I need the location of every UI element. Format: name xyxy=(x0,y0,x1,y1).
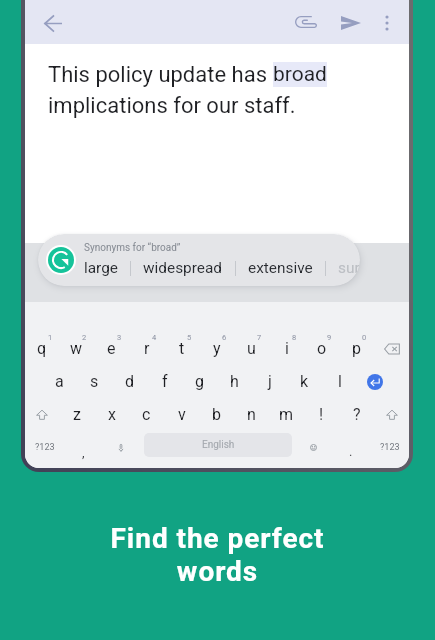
button[interactable]: g xyxy=(182,365,217,398)
staticText: Synonyms for “broad” xyxy=(84,242,181,254)
staticText: Find the perfect words xyxy=(0,522,435,588)
button[interactable]: m xyxy=(269,398,304,431)
staticText: 1 xyxy=(48,333,53,342)
staticText: , xyxy=(82,445,85,460)
staticText: 5 xyxy=(187,333,192,342)
staticText: d xyxy=(125,372,135,391)
staticText: 7 xyxy=(257,333,262,342)
staticText: ?123 xyxy=(35,442,55,453)
staticText: implications for our staff. xyxy=(48,93,296,119)
staticText: g xyxy=(195,372,204,391)
button[interactable]: Emoji xyxy=(300,431,326,464)
staticText: c xyxy=(142,405,151,424)
staticText: t xyxy=(179,339,185,358)
staticText: ? xyxy=(353,405,361,424)
button[interactable]: 2 xyxy=(59,332,94,365)
staticText: y xyxy=(213,339,221,358)
button[interactable]: 7 xyxy=(234,332,269,365)
staticText: i xyxy=(285,339,289,358)
button[interactable]: Shift xyxy=(25,398,59,431)
button[interactable]: c xyxy=(129,398,164,431)
staticText: j xyxy=(268,372,272,391)
button[interactable]: l xyxy=(322,365,357,398)
button[interactable]: Synonyms for “broad” xyxy=(38,234,360,286)
button[interactable]: v xyxy=(164,398,199,431)
button[interactable]: 1 xyxy=(25,332,59,365)
staticText: e xyxy=(107,339,116,358)
other: Enter xyxy=(367,374,383,390)
button[interactable]: More options xyxy=(373,9,401,37)
button[interactable]: ?123 xyxy=(373,431,407,464)
staticText: l xyxy=(338,372,342,391)
button[interactable]: 6 xyxy=(199,332,234,365)
staticText: o xyxy=(317,339,327,358)
staticText: 4 xyxy=(152,333,157,342)
button[interactable]: ! xyxy=(304,398,339,431)
button[interactable]: a xyxy=(42,365,77,398)
button[interactable]: extensive xyxy=(248,259,313,277)
button[interactable]: English xyxy=(144,433,292,457)
button[interactable]: k xyxy=(287,365,322,398)
button[interactable]: Shift xyxy=(374,398,409,431)
button[interactable]: 0 xyxy=(339,332,374,365)
button[interactable]: x xyxy=(94,398,129,431)
other: Backspace xyxy=(384,343,400,355)
button[interactable]: h xyxy=(217,365,252,398)
staticText: 6 xyxy=(222,333,227,342)
staticText: s xyxy=(90,372,99,391)
staticText: 3 xyxy=(117,333,122,342)
staticText: u xyxy=(247,339,256,358)
staticText: 9 xyxy=(327,333,332,342)
staticText: r xyxy=(144,339,150,358)
button[interactable]: Send xyxy=(332,4,370,42)
staticText: a xyxy=(55,372,64,391)
staticText: This policy update has xyxy=(48,62,273,88)
staticText: English xyxy=(202,439,235,451)
staticText: 2 xyxy=(82,333,87,342)
button[interactable]: large xyxy=(84,259,118,277)
button[interactable]: Backspace xyxy=(374,332,409,365)
button[interactable]: 4 xyxy=(129,332,164,365)
staticText: x xyxy=(108,405,116,424)
staticText: h xyxy=(230,372,239,391)
button[interactable]: Attach file xyxy=(287,3,325,41)
button[interactable]: f xyxy=(147,365,182,398)
button[interactable]: 5 xyxy=(164,332,199,365)
staticText: w xyxy=(70,339,83,358)
button[interactable]: n xyxy=(234,398,269,431)
staticText: 0 xyxy=(362,333,367,342)
staticText: z xyxy=(73,405,81,424)
staticText: 8 xyxy=(292,333,297,342)
button[interactable]: 9 xyxy=(304,332,339,365)
button[interactable]: 3 xyxy=(94,332,129,365)
staticText: ! xyxy=(319,405,324,424)
staticText: m xyxy=(279,405,294,424)
button[interactable]: widespread xyxy=(143,259,223,277)
button[interactable]: . xyxy=(338,431,364,464)
button[interactable]: Back xyxy=(33,3,73,43)
button[interactable]: s xyxy=(77,365,112,398)
staticText: p xyxy=(352,339,361,358)
staticText: . xyxy=(349,444,353,459)
button[interactable]: d xyxy=(112,365,147,398)
button[interactable]: 8 xyxy=(269,332,304,365)
button[interactable]: j xyxy=(252,365,287,398)
staticText: b xyxy=(212,405,221,424)
button[interactable]: sure xyxy=(338,259,360,277)
staticText: q xyxy=(37,339,47,358)
button[interactable]: Voice input xyxy=(108,431,134,464)
staticText: n xyxy=(247,405,256,424)
staticText: v xyxy=(178,405,186,424)
button[interactable]: ?123 xyxy=(28,431,62,464)
staticText: broad xyxy=(273,62,327,87)
button[interactable]: b xyxy=(199,398,234,431)
button[interactable]: , xyxy=(70,431,96,464)
staticText: ?123 xyxy=(380,442,400,453)
staticText: k xyxy=(300,372,309,391)
staticText: f xyxy=(162,372,168,391)
button[interactable]: z xyxy=(59,398,94,431)
button[interactable]: ? xyxy=(339,398,374,431)
button[interactable]: Enter xyxy=(357,365,392,398)
